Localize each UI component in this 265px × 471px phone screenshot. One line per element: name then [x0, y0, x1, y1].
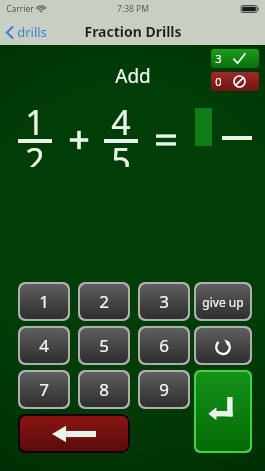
button[interactable]: Incorrect count — [211, 72, 259, 91]
staticText: 7 — [39, 378, 49, 401]
button[interactable]: 9 — [140, 372, 188, 407]
button[interactable]: Backspace — [20, 416, 128, 451]
button[interactable]: Correct count — [211, 49, 259, 68]
staticText: 0 — [99, 422, 109, 445]
button[interactable]: 1 — [20, 284, 68, 319]
staticText: 0 — [215, 74, 222, 89]
staticText: 6 — [159, 334, 169, 357]
staticText: 5 — [111, 137, 131, 167]
button[interactable]: 8 — [80, 372, 128, 407]
button[interactable]: 7 — [20, 372, 68, 407]
staticText: 1 — [39, 290, 49, 313]
button[interactable]: 5 — [80, 328, 128, 363]
button[interactable]: 3 — [140, 284, 188, 319]
staticText: Carrier — [6, 3, 34, 15]
button[interactable]: 2 — [80, 284, 128, 319]
staticText: Fraction Drills — [84, 22, 182, 41]
button[interactable]: drills — [0, 20, 55, 44]
staticText: 8 — [99, 378, 109, 401]
button[interactable] — [186, 112, 220, 166]
staticText: give up — [202, 294, 244, 310]
staticText: Add — [115, 63, 151, 89]
button[interactable]: 4 — [20, 328, 68, 363]
button[interactable]: give up — [196, 284, 250, 319]
button[interactable]: 6 — [140, 328, 188, 363]
staticText: 3 — [215, 51, 222, 66]
staticText: drills — [17, 23, 47, 41]
staticText: 7:38 PM — [117, 3, 149, 15]
staticText: 4 — [111, 99, 131, 145]
staticText: 9 — [159, 378, 169, 401]
button[interactable]: Enter — [196, 372, 250, 451]
staticText: 4 — [39, 334, 49, 357]
button[interactable]: Undo — [196, 328, 250, 363]
staticText: 3 — [159, 290, 169, 313]
staticText: 5 — [99, 334, 109, 357]
button[interactable]: 0 — [80, 416, 128, 451]
staticText: 2 — [25, 137, 45, 167]
staticText: 2 — [99, 290, 109, 313]
staticText: 1 — [25, 99, 45, 145]
